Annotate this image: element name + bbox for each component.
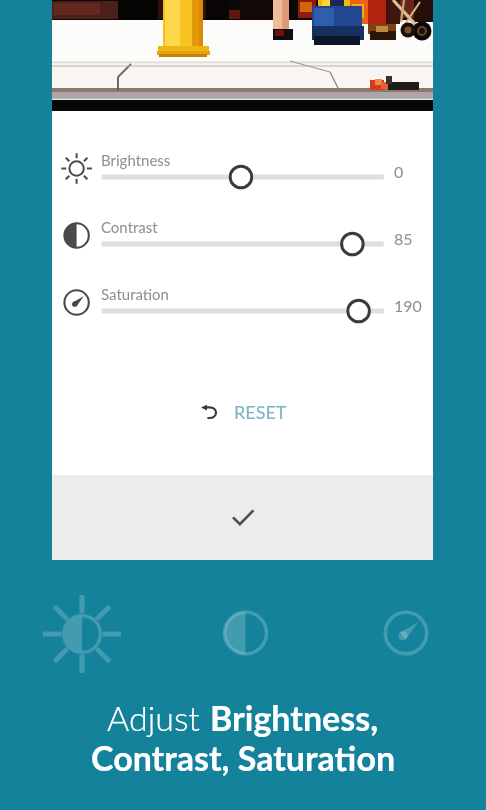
button[interactable]: Contrast [215, 603, 275, 663]
staticText: 190 [394, 296, 422, 315]
staticText: Brightness [101, 151, 171, 169]
staticText: 85 [394, 229, 413, 248]
button[interactable]: Saturation [376, 603, 436, 663]
staticText: Brightness, [210, 697, 379, 738]
staticText: Adjust [107, 697, 210, 738]
staticText: Saturation [101, 285, 169, 303]
staticText: RESET [234, 401, 287, 423]
staticText: Contrast, Saturation [91, 737, 396, 778]
button[interactable]: Brightness [42, 594, 122, 674]
button[interactable]: RESET [189, 396, 299, 427]
button[interactable]: Contrast [52, 214, 433, 266]
button[interactable]: Apply [52, 475, 433, 560]
staticText: 0 [394, 162, 404, 181]
button[interactable]: Brightness [52, 147, 433, 199]
button[interactable]: Saturation [52, 281, 433, 333]
staticText: Contrast [101, 218, 158, 236]
